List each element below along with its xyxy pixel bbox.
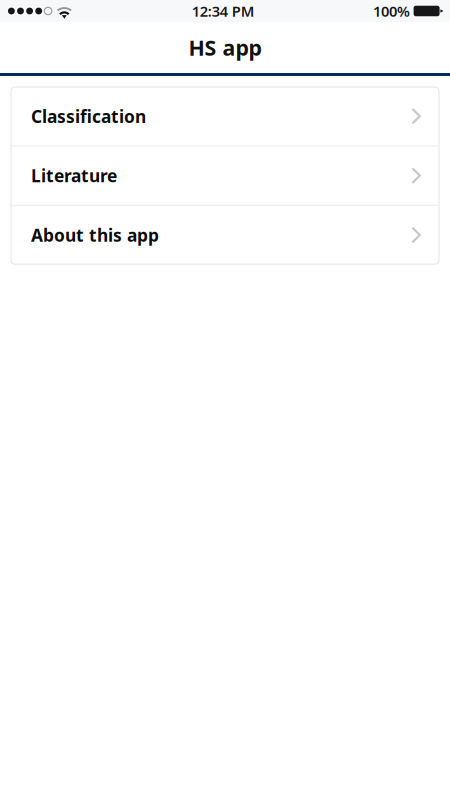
- staticText: Literature: [31, 164, 117, 187]
- button[interactable]: Classification: [11, 87, 439, 145]
- staticText: 12:34 PM: [192, 1, 255, 21]
- staticText: 100%: [373, 1, 410, 21]
- staticText: Classification: [31, 105, 146, 128]
- staticText: HS app: [188, 33, 261, 62]
- button[interactable]: About this app: [11, 206, 439, 264]
- button[interactable]: Literature: [11, 146, 439, 205]
- staticText: About this app: [31, 223, 159, 246]
